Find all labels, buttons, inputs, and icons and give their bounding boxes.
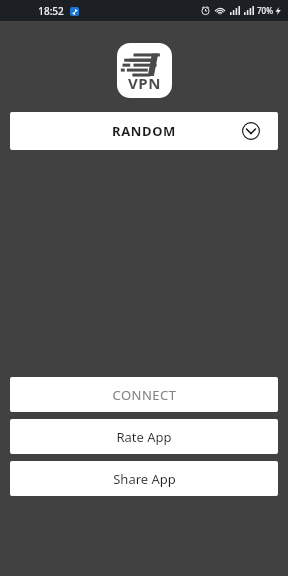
staticText: Rate App — [116, 428, 172, 446]
other: VPN app logo — [117, 43, 172, 98]
button[interactable]: Share App — [10, 461, 278, 496]
button[interactable]: Rate App — [10, 419, 278, 454]
button[interactable]: RANDOM — [10, 112, 278, 150]
staticText: CONNECT — [112, 386, 177, 404]
staticText: 18:52 — [38, 4, 64, 18]
staticText: Share App — [113, 470, 176, 488]
staticText: 70% — [257, 5, 273, 16]
staticText: RANDOM — [112, 122, 176, 140]
button[interactable]: CONNECT — [10, 377, 278, 412]
staticText: VPN — [128, 73, 161, 93]
